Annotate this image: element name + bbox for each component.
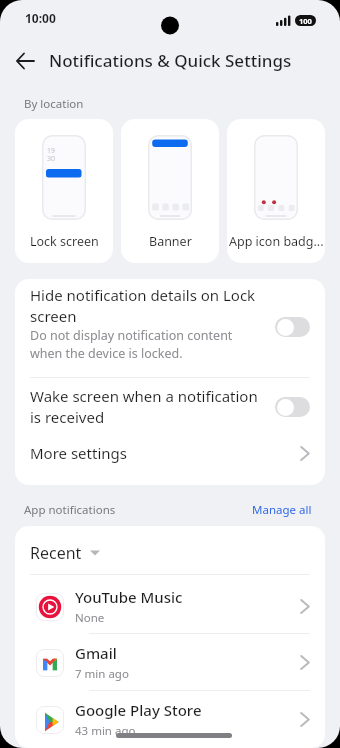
staticText: App notifications [24, 502, 116, 518]
staticText: Gmail [75, 643, 117, 663]
staticText: Notifications & Quick Settings [49, 49, 292, 72]
button[interactable]: 19 30 [15, 119, 113, 263]
button[interactable]: Banner [121, 119, 219, 263]
staticText: 7 min ago [75, 666, 129, 682]
button[interactable] [275, 317, 310, 337]
staticText: None [75, 610, 105, 626]
staticText: YouTube Music [75, 587, 183, 607]
button[interactable]: Recent [30, 542, 310, 564]
button[interactable] [275, 397, 310, 417]
staticText: Hide notification details on Lock screen [30, 285, 256, 327]
staticText: App icon badg... [229, 233, 324, 250]
button[interactable]: YouTube Music [36, 580, 310, 633]
button[interactable] [10, 46, 40, 76]
staticText: Lock screen [30, 233, 99, 250]
button[interactable]: Manage all [252, 502, 312, 518]
staticText: 10:00 [25, 10, 56, 26]
button[interactable]: Hide notification details on Lock screen [30, 285, 310, 362]
staticText: By location [24, 96, 84, 112]
button[interactable]: More settings [30, 439, 310, 467]
button[interactable]: App icon badg... [227, 119, 325, 263]
button[interactable]: Google Play Store [36, 691, 310, 748]
staticText: Wake screen when a notification is recei… [30, 386, 263, 428]
staticText: 19 30 [47, 146, 56, 163]
staticText: Google Play Store [75, 700, 202, 720]
button[interactable]: Gmail [36, 635, 310, 690]
staticText: 43 min ago [75, 723, 136, 739]
staticText: Banner [149, 233, 192, 250]
staticText: Do not display notification content when… [30, 327, 233, 362]
staticText: 100 [299, 16, 312, 26]
staticText: More settings [30, 443, 300, 463]
staticText: Recent [30, 542, 82, 564]
button[interactable]: Wake screen when a notification is recei… [30, 386, 310, 428]
